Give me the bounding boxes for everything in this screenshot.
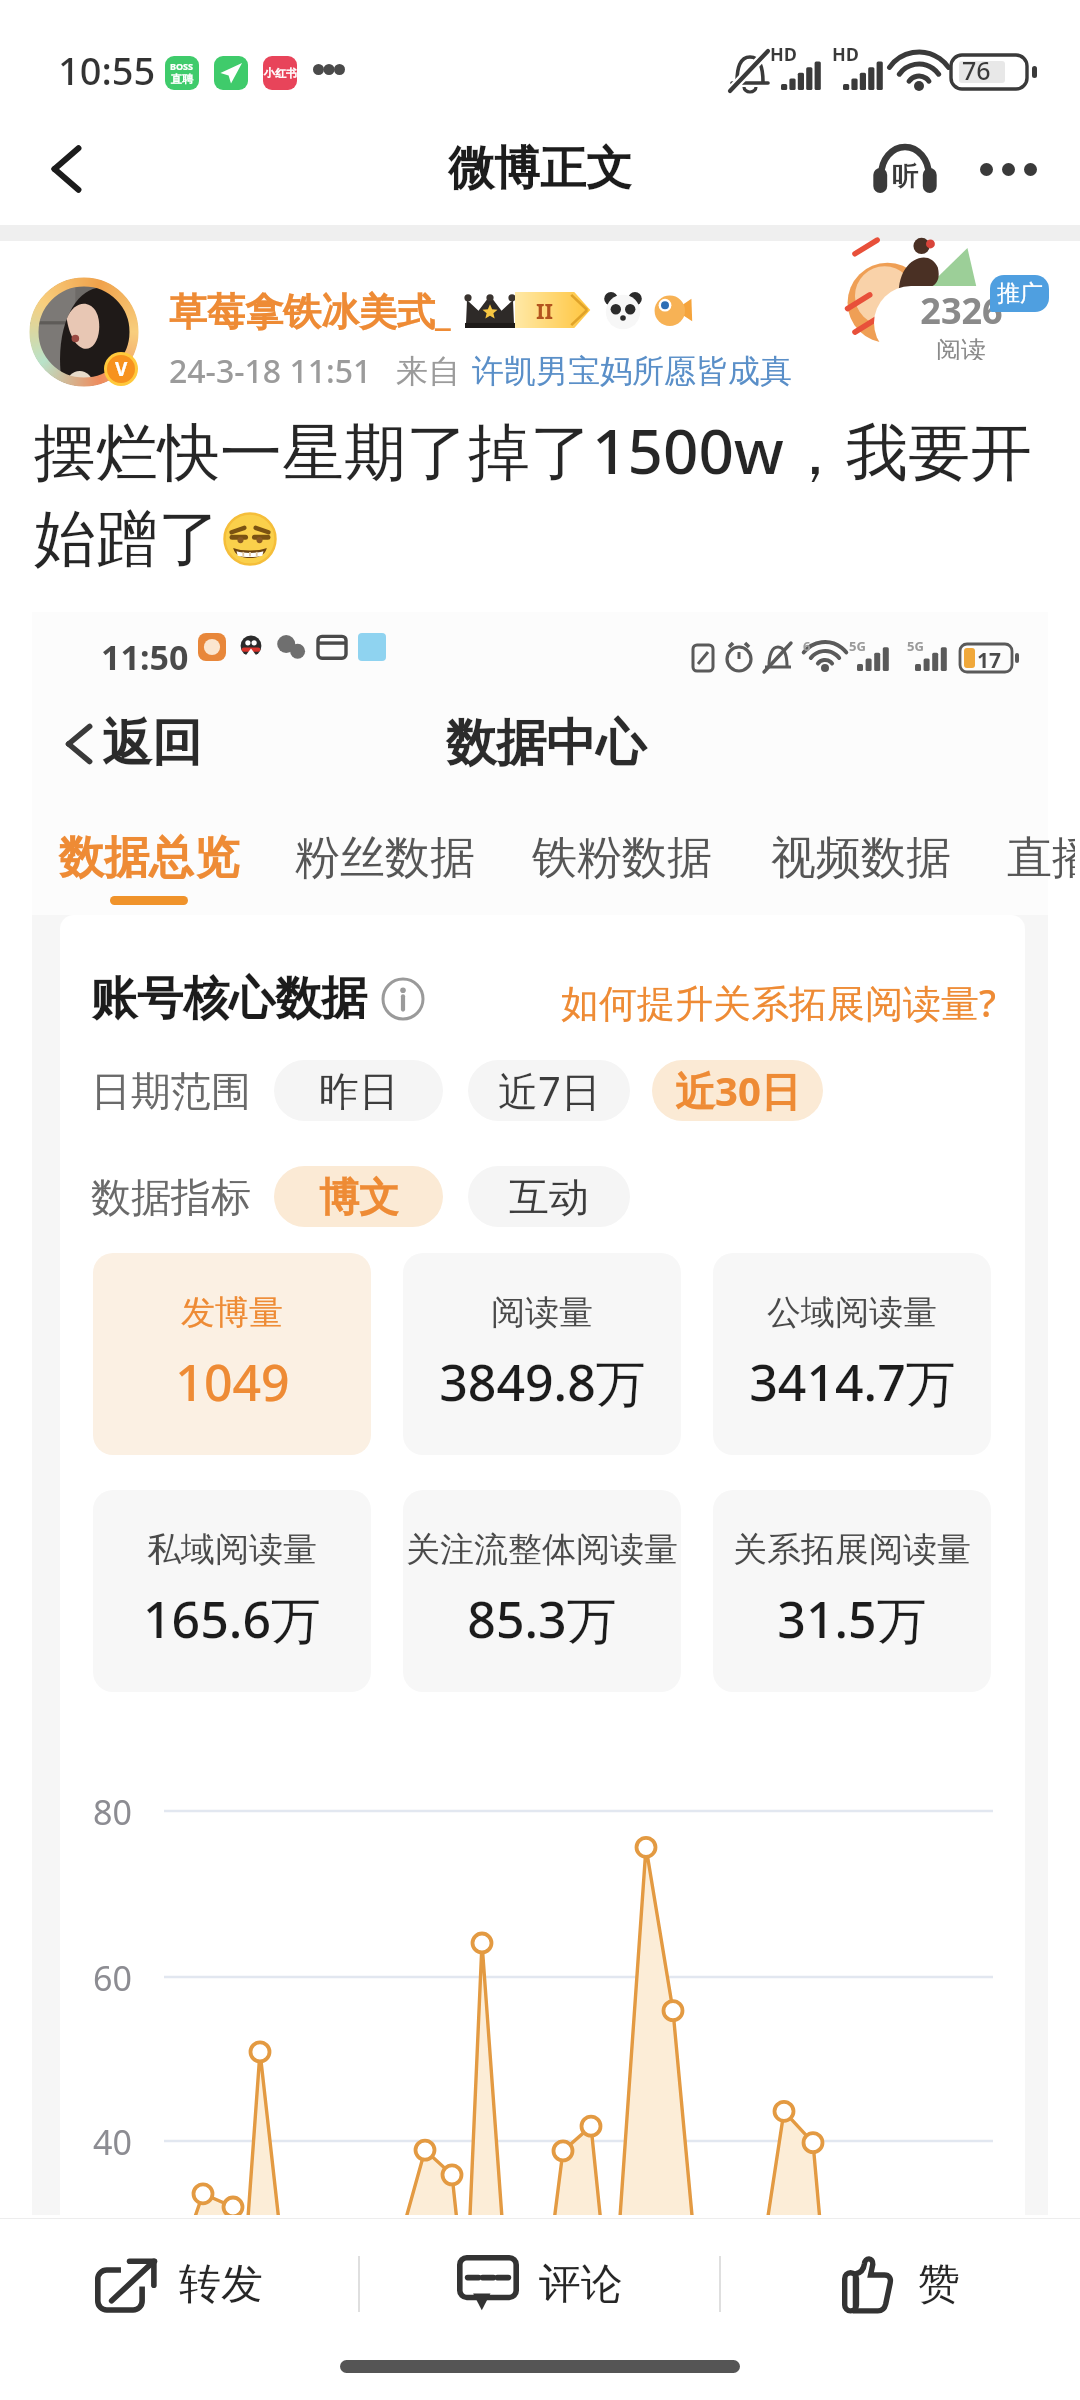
staticText: 赞 — [918, 2258, 960, 2311]
button[interactable]: More options — [963, 124, 1053, 214]
staticText: 5G — [907, 637, 924, 655]
staticText: 11:50 — [101, 634, 189, 680]
button[interactable]: Profile avatar — [30, 278, 140, 388]
staticText: 博文 — [319, 1172, 399, 1222]
staticText: 2326 — [920, 286, 1003, 335]
staticText: 小红书 — [264, 66, 297, 80]
staticText: 关系拓展阅读量 — [733, 1528, 971, 1571]
staticText: 1049 — [175, 1348, 290, 1416]
button[interactable]: 互动 — [468, 1166, 630, 1227]
button[interactable]: 昨日 — [274, 1060, 443, 1121]
staticText: 5G — [849, 637, 866, 655]
staticText: 阅读量 — [491, 1291, 593, 1334]
staticText: 发博量 — [181, 1291, 283, 1334]
staticText: 来自 — [396, 351, 460, 391]
button[interactable]: Level badge — [465, 292, 591, 328]
button[interactable]: 近30日 — [652, 1060, 823, 1121]
staticText: 165.6万 — [143, 1585, 321, 1653]
button[interactable]: 关注流整体阅读量 — [403, 1490, 681, 1692]
button[interactable]: 推广 — [990, 275, 1049, 312]
staticText: 账号核心数据 — [91, 970, 367, 1028]
staticText: 听 — [892, 160, 918, 193]
staticText: 数据中心 — [446, 712, 646, 775]
staticText: 微博正文 — [448, 140, 632, 198]
staticText: 推广 — [997, 279, 1043, 308]
staticText: 10:55 — [58, 44, 156, 96]
button[interactable]: 博文 — [274, 1166, 443, 1227]
staticText: 评论 — [539, 2258, 623, 2311]
button[interactable]: 转发 — [0, 2219, 358, 2349]
staticText: HD — [770, 42, 797, 67]
staticText: 31.5万 — [777, 1585, 927, 1653]
staticText: 近7日 — [498, 1063, 601, 1118]
staticText: 60 — [93, 1955, 132, 2001]
staticText: 日期范围 — [91, 1066, 251, 1116]
staticText: BOSS — [170, 60, 194, 72]
button[interactable]: 视频数据 — [771, 830, 951, 887]
button[interactable]: 粉丝数据 — [295, 830, 475, 887]
staticText: 6 — [803, 637, 811, 655]
button[interactable]: 草莓拿铁冰美式_ — [169, 284, 451, 336]
staticText: 阅读 — [936, 335, 986, 360]
button[interactable]: 铁粉数据 — [532, 830, 712, 887]
staticText: 互动 — [509, 1172, 589, 1222]
button[interactable]: 关系拓展阅读量 — [713, 1490, 991, 1692]
staticText: 80 — [93, 1789, 132, 1835]
staticText: 摆烂快一星期了掉了1500w，我要开 — [34, 408, 1032, 493]
button[interactable]: 数据总览 — [59, 830, 239, 905]
staticText: 转发 — [179, 2258, 263, 2311]
staticText: 24-3-18 11:51 — [169, 349, 372, 393]
staticText: 私域阅读量 — [147, 1528, 317, 1571]
staticText: HD — [832, 42, 859, 67]
staticText: 数据指标 — [91, 1172, 251, 1222]
button[interactable]: 赞 — [721, 2219, 1080, 2349]
staticText: 昨日 — [319, 1066, 399, 1116]
staticText: 3849.8万 — [439, 1348, 646, 1416]
button[interactable]: 发博量 — [93, 1253, 371, 1455]
button[interactable]: 阅读量 — [403, 1253, 681, 1455]
staticText: 3414.7万 — [749, 1348, 956, 1416]
staticText: 17 — [977, 646, 1002, 675]
staticText: 关注流整体阅读量 — [406, 1528, 678, 1571]
button[interactable]: 近7日 — [468, 1060, 630, 1121]
staticText: 76 — [962, 53, 991, 87]
staticText: 直聘 — [171, 72, 193, 86]
button[interactable]: Back — [22, 124, 112, 214]
button[interactable]: 返回 — [58, 712, 202, 775]
staticText: 85.3万 — [467, 1585, 617, 1653]
staticText: 公域阅读量 — [767, 1291, 937, 1334]
staticText: V — [115, 356, 128, 382]
staticText: 近30日 — [675, 1063, 801, 1118]
staticText: 始蹭了 — [34, 500, 220, 578]
button[interactable]: 许凯男宝妈所愿皆成真 — [472, 351, 792, 391]
button[interactable]: 直播 — [1007, 830, 1075, 887]
button[interactable]: 私域阅读量 — [93, 1490, 371, 1692]
staticText: II — [536, 295, 554, 325]
button[interactable]: Listen to article — [857, 121, 953, 217]
button[interactable]: 2326 — [874, 286, 1048, 360]
button[interactable]: 评论 — [360, 2219, 719, 2349]
staticText: 40 — [93, 2119, 132, 2165]
staticText: 返回 — [102, 712, 202, 775]
button[interactable]: Info — [381, 977, 425, 1021]
button[interactable]: 如何提升关系拓展阅读量? — [561, 976, 996, 1028]
staticText: 数据总览 — [59, 830, 239, 887]
button[interactable]: 公域阅读量 — [713, 1253, 991, 1455]
